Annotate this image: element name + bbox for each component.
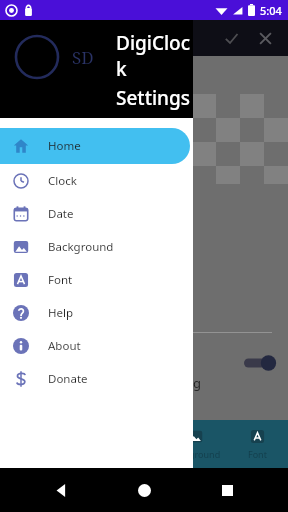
button[interactable]: Font — [0, 263, 193, 296]
staticText: Donate — [48, 371, 88, 387]
staticText: 5:04 — [260, 3, 282, 18]
staticText: g — [193, 374, 201, 392]
button[interactable]: Cancel — [248, 21, 282, 55]
staticText: Home — [48, 138, 81, 154]
button[interactable]: About — [0, 329, 193, 362]
staticText: Font — [48, 272, 73, 288]
button[interactable]: Confirm — [214, 21, 248, 55]
button[interactable]: Back — [39, 468, 83, 512]
staticText: Clock — [48, 173, 77, 189]
button[interactable]: Donate — [0, 362, 193, 395]
button[interactable]: Background — [0, 230, 193, 263]
staticText: Help — [48, 305, 74, 321]
staticText: DigiClock — [116, 30, 193, 82]
button[interactable]: Help — [0, 296, 193, 329]
button[interactable]: Clock — [0, 164, 193, 197]
staticText: Date — [48, 206, 74, 222]
button[interactable]: Home — [122, 468, 166, 512]
button[interactable]: Recent apps — [205, 468, 249, 512]
button[interactable]: Date — [0, 197, 193, 230]
staticText: About — [48, 338, 81, 354]
staticText: Font — [248, 448, 267, 460]
staticText: Settings — [116, 85, 190, 111]
button[interactable]: Background — [164, 420, 226, 468]
button[interactable]: Home — [0, 128, 190, 164]
staticText: SD — [72, 46, 94, 69]
staticText: Background — [169, 448, 221, 460]
button[interactable]: Font — [226, 420, 288, 468]
staticText: Background — [48, 239, 114, 255]
